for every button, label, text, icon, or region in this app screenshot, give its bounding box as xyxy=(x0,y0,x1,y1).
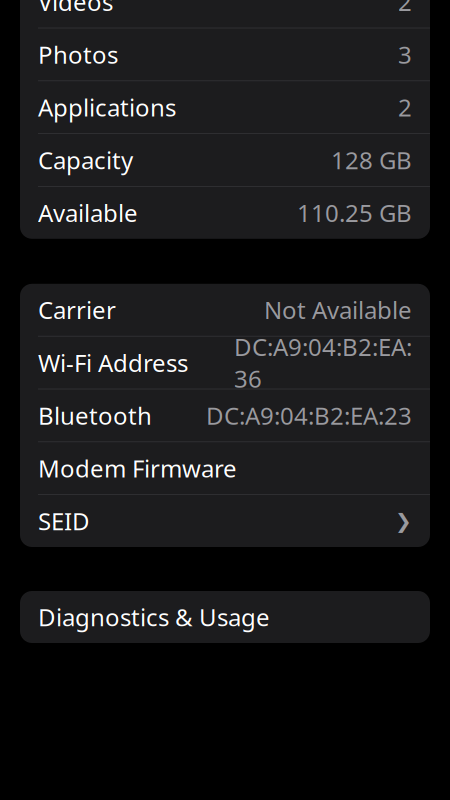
staticText: Modem Firmware xyxy=(38,452,237,484)
staticText: Photos xyxy=(38,38,118,70)
button[interactable]: Carrier xyxy=(20,284,430,336)
staticText: 3 xyxy=(398,38,412,70)
staticText: Not Available xyxy=(264,294,412,326)
button[interactable]: Available xyxy=(20,187,430,239)
staticText: ❯ xyxy=(395,510,412,532)
button[interactable]: Wi-Fi Address xyxy=(20,337,430,389)
staticText: Carrier xyxy=(38,294,116,326)
staticText: 2 xyxy=(398,91,412,123)
button[interactable]: Capacity xyxy=(20,134,430,186)
button[interactable]: Bluetooth xyxy=(20,389,430,441)
staticText: Available xyxy=(38,197,138,229)
button[interactable]: Photos xyxy=(20,28,430,80)
button[interactable]: SEID xyxy=(20,495,430,547)
staticText: SEID xyxy=(38,505,90,537)
staticText: 2 xyxy=(398,0,412,18)
staticText: Videos xyxy=(38,0,113,18)
staticText: DC:A9:04:B2:EA:36 xyxy=(234,331,412,394)
button[interactable]: Diagnostics & Usage xyxy=(20,591,430,643)
staticText: Diagnostics & Usage xyxy=(38,601,270,633)
staticText: Wi-Fi Address xyxy=(38,347,188,379)
button[interactable]: Applications xyxy=(20,81,430,133)
staticText: Capacity xyxy=(38,144,133,176)
button[interactable]: Modem Firmware xyxy=(20,442,430,494)
button[interactable]: Videos xyxy=(20,0,430,28)
staticText: Applications xyxy=(38,91,176,123)
staticText: DC:A9:04:B2:EA:23 xyxy=(206,399,412,431)
staticText: 110.25 GB xyxy=(297,197,412,229)
staticText: Bluetooth xyxy=(38,399,152,431)
staticText: 128 GB xyxy=(331,144,412,176)
